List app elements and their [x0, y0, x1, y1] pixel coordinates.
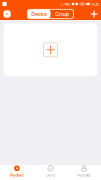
- staticText: Group: [55, 10, 69, 18]
- button[interactable]: Scan: [0, 8, 13, 20]
- staticText: My device: [10, 172, 24, 178]
- staticText: 1.73K/s: [60, 1, 70, 7]
- button[interactable]: My center: [67, 165, 101, 180]
- staticText: 98%: [79, 1, 86, 7]
- button[interactable]: Add device: [87, 8, 100, 20]
- button[interactable]: My device: [0, 165, 34, 180]
- staticText: Demo: [46, 172, 55, 178]
- button[interactable]: Add device: [43, 43, 57, 57]
- staticText: 16:28: [91, 1, 99, 7]
- button[interactable]: Device: [27, 9, 50, 19]
- button[interactable]: Group: [50, 9, 73, 19]
- staticText: Device: [31, 10, 47, 18]
- staticText: My center: [77, 172, 91, 178]
- button[interactable]: Demo: [34, 165, 67, 180]
